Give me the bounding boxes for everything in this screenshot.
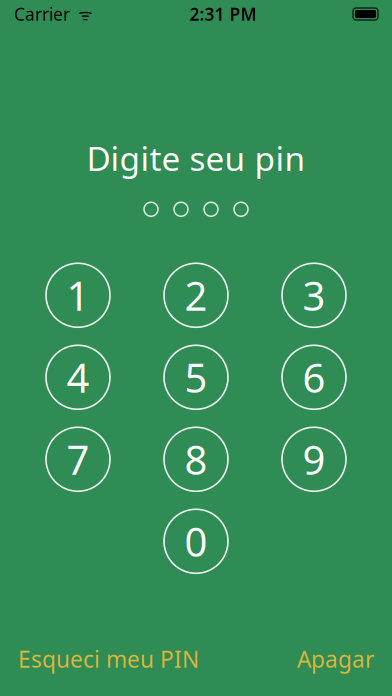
staticText: 2:31 PM (189, 2, 256, 25)
staticText: 3 (302, 269, 325, 322)
button[interactable]: 6 (282, 345, 346, 409)
staticText: 2 (184, 269, 207, 322)
staticText: 6 (302, 351, 325, 404)
button[interactable]: 7 (46, 427, 110, 491)
staticText: ᯤ (70, 3, 93, 25)
button[interactable]: 9 (282, 427, 346, 491)
staticText: 9 (302, 433, 325, 486)
staticText: Carrier (14, 2, 70, 25)
staticText: 4 (66, 351, 89, 404)
staticText: Apagar (297, 644, 374, 674)
button[interactable]: 4 (46, 345, 110, 409)
button[interactable]: 3 (282, 263, 346, 327)
button[interactable]: Esqueci meu PIN (18, 636, 199, 682)
staticText: 7 (66, 433, 89, 486)
button[interactable]: 0 (164, 509, 228, 573)
staticText: Digite seu pin (86, 136, 305, 180)
staticText: 1 (66, 269, 89, 322)
staticText: 5 (184, 351, 207, 404)
staticText: 8 (184, 433, 207, 486)
staticText: Esqueci meu PIN (18, 644, 199, 674)
button[interactable]: Apagar (297, 636, 374, 682)
button[interactable]: 8 (164, 427, 228, 491)
staticText: 0 (184, 515, 207, 568)
button[interactable]: 5 (164, 345, 228, 409)
button[interactable]: 1 (46, 263, 110, 327)
button[interactable]: 2 (164, 263, 228, 327)
